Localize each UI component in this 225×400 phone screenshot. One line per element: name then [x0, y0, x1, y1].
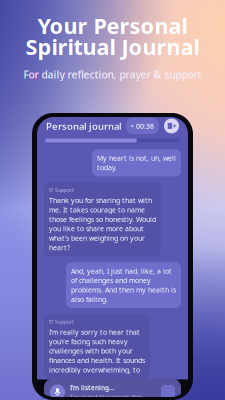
staticText: Personal journal: [46, 119, 122, 132]
staticText: 00:38: [136, 121, 154, 131]
button[interactable]: End session: [159, 118, 179, 133]
staticText: I'm really sorry to hear that you're fac…: [49, 327, 145, 374]
button[interactable]: 00:38: [126, 118, 159, 134]
staticText: Spiritual Journal: [25, 32, 199, 61]
staticText: I'm listening...: [70, 383, 115, 392]
staticText: 100: [164, 105, 176, 114]
staticText: Thank you for sharing that with me. It t…: [49, 196, 156, 252]
staticText: And, yeah, I just had, like, a lot of ch…: [71, 266, 176, 304]
staticText: For daily reflection, prayer & support: [23, 67, 201, 81]
staticText: Support: [55, 318, 74, 325]
staticText: Tap to end the conversation: [70, 393, 143, 400]
button[interactable]: I'm listening...: [44, 378, 181, 400]
staticText: My heart is not, uh, well today.: [97, 153, 176, 172]
staticText: 05:54: [46, 103, 69, 116]
staticText: Support: [55, 186, 74, 194]
staticText: Your Personal: [37, 11, 187, 40]
